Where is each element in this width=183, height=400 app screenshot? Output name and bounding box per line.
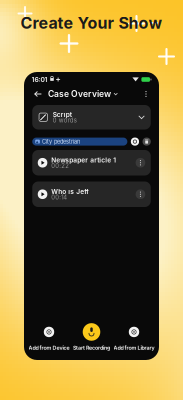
button[interactable]: Preview scene [131, 137, 139, 146]
button[interactable]: More options [140, 87, 152, 101]
staticText: Script [53, 110, 72, 118]
button[interactable]: Back [31, 87, 45, 101]
staticText: Add from Device [28, 344, 69, 351]
button[interactable]: Start Recording [70, 323, 113, 351]
staticText: 00:14 [51, 194, 67, 201]
staticText: Who is Jeff [51, 187, 89, 195]
staticText: Newspaper article 1 [51, 156, 116, 164]
staticText: Start Recording [73, 344, 110, 351]
button[interactable]: Case Overview [48, 87, 118, 101]
button[interactable]: Newspaper article 1 [32, 150, 151, 175]
staticText: Add from Library [113, 344, 154, 351]
button[interactable]: Who is Jeff [32, 181, 151, 207]
staticText: 00:22 [51, 162, 69, 169]
button[interactable]: Delete [143, 137, 151, 146]
button[interactable]: Add from Device [28, 323, 70, 351]
button[interactable]: Add from Library [113, 323, 155, 351]
staticText: City pedestrian [42, 138, 80, 145]
staticText: 16:01 [31, 75, 47, 84]
staticText: 0 words [53, 117, 77, 124]
staticText: Case Overview [48, 89, 111, 99]
staticText: Create Your Show [20, 13, 162, 33]
button[interactable]: Script [32, 105, 151, 129]
